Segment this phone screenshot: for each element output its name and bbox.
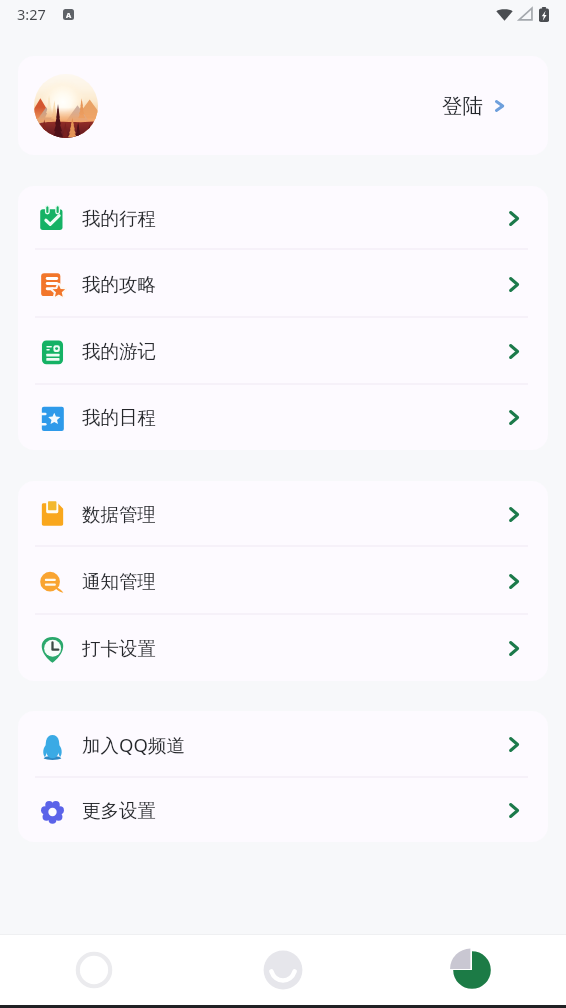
staticText: 我的攻略	[82, 273, 156, 296]
button[interactable]: Back	[0, 952, 188, 988]
button[interactable]: 我的行程	[18, 186, 548, 250]
staticText: 数据管理	[82, 503, 156, 526]
staticText: 更多设置	[82, 799, 156, 822]
button[interactable]: 通知管理	[18, 547, 548, 615]
staticText: 我的日程	[82, 406, 156, 429]
staticText: 我的游记	[82, 340, 156, 363]
button[interactable]: 打卡设置	[18, 615, 548, 681]
button[interactable]: 登陆	[18, 56, 548, 155]
staticText: 我的行程	[82, 207, 156, 230]
staticText: 通知管理	[82, 570, 156, 593]
staticText: 登陆	[442, 93, 483, 119]
button[interactable]: 数据管理	[18, 481, 548, 547]
button[interactable]: 加入QQ频道	[18, 711, 548, 778]
staticText: 加入QQ频道	[82, 732, 185, 757]
staticText: A	[66, 10, 72, 20]
button[interactable]: 我的游记	[18, 318, 548, 385]
button[interactable]: 更多设置	[18, 778, 548, 842]
button[interactable]: Home	[188, 950, 377, 990]
button[interactable]: Statistics	[377, 949, 566, 991]
staticText: 打卡设置	[82, 637, 156, 660]
button[interactable]: 我的日程	[18, 385, 548, 450]
staticText: 3:27	[17, 4, 46, 24]
button[interactable]: 我的攻略	[18, 250, 548, 318]
